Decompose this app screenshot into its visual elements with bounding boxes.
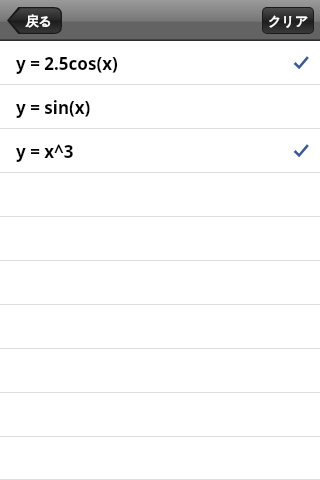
staticText: y = x^3 xyxy=(16,140,74,163)
button[interactable] xyxy=(0,349,320,393)
button[interactable]: 戻る xyxy=(7,7,62,34)
button[interactable] xyxy=(0,217,320,261)
staticText: y = 2.5cos(x) xyxy=(16,52,118,75)
button[interactable] xyxy=(0,437,320,480)
button[interactable]: クリア xyxy=(263,8,313,33)
other: Selected xyxy=(293,55,309,71)
staticText: y = sin(x) xyxy=(16,96,91,119)
button[interactable]: y = 2.5cos(x) xyxy=(0,41,320,85)
other: Selected xyxy=(293,143,309,159)
staticText: クリア xyxy=(268,13,308,29)
button[interactable]: y = sin(x) xyxy=(0,85,320,129)
button[interactable] xyxy=(0,393,320,437)
button[interactable]: y = x^3 xyxy=(0,129,320,173)
button[interactable] xyxy=(0,305,320,349)
staticText: 戻る xyxy=(25,13,52,29)
button[interactable] xyxy=(0,261,320,305)
button[interactable] xyxy=(0,173,320,217)
